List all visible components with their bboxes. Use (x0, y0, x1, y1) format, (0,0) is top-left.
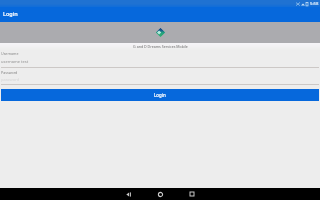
staticText: username test (1, 59, 29, 64)
staticText: G and D Dreams Services Mobile (133, 44, 188, 49)
button[interactable]: Back (112, 188, 144, 200)
staticText: Login (154, 92, 166, 98)
staticText: Login (3, 10, 18, 17)
button[interactable]: Home (144, 188, 176, 200)
button[interactable]: Recent apps (176, 188, 208, 200)
staticText: Username (1, 51, 19, 56)
button[interactable]: Login (1, 89, 319, 101)
staticText: 5:58 (310, 1, 319, 7)
staticText: password (1, 77, 20, 82)
staticText: Password (1, 70, 18, 75)
